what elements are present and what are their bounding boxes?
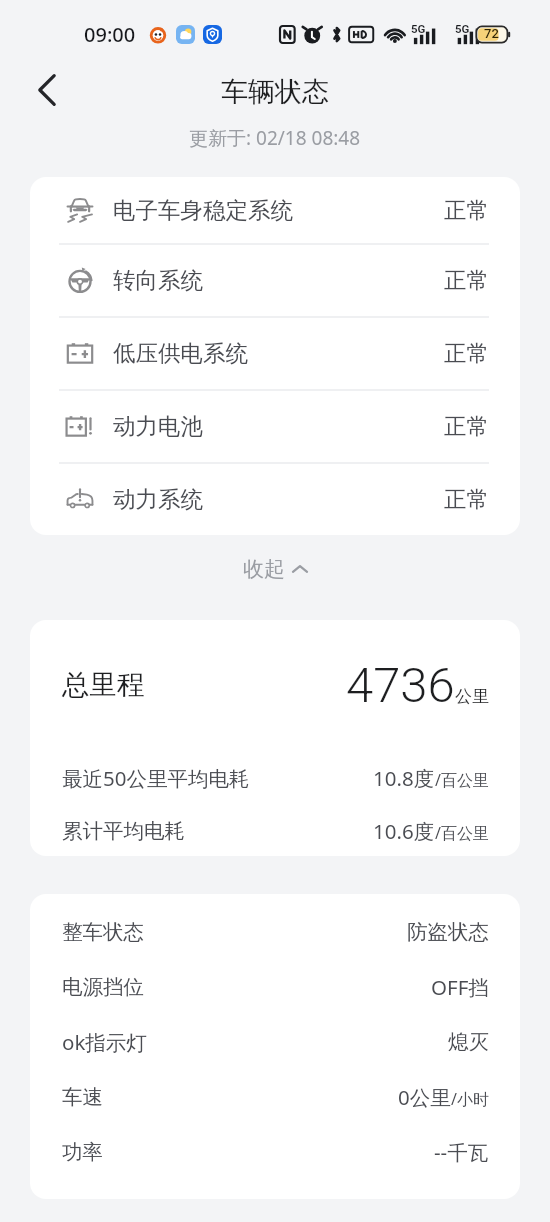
staticText: 72 (484, 26, 499, 41)
staticText: 转向系统 (113, 266, 203, 294)
staticText: 公里 (455, 686, 489, 707)
staticText: ok指示灯 (62, 1028, 147, 1056)
staticText: 电子车身稳定系统 (113, 196, 293, 224)
staticText: 熄灭 (448, 1029, 489, 1055)
staticText: --千瓦 (434, 1138, 489, 1166)
staticText: 车辆状态 (221, 75, 329, 109)
staticText: 更新于: 02/18 08:48 (189, 125, 361, 151)
staticText: 0公里 (398, 1083, 451, 1111)
staticText: 功率 (62, 1139, 103, 1165)
staticText: 车速 (62, 1084, 103, 1110)
staticText: 正常 (444, 196, 489, 224)
button[interactable]: 转向系统 (30, 243, 520, 316)
button[interactable]: 收起 (0, 535, 550, 620)
staticText: 10.6度 (373, 817, 435, 845)
staticText: 4736 (346, 657, 455, 714)
staticText: 5G (411, 22, 426, 35)
button[interactable]: 低压供电系统 (30, 316, 520, 389)
staticText: 电源挡位 (62, 974, 144, 1000)
staticText: /小时 (451, 1088, 489, 1110)
staticText: 总里程 (62, 668, 145, 703)
button[interactable]: 动力电池 (30, 389, 520, 462)
staticText: 防盗状态 (407, 919, 489, 945)
button[interactable]: Back (21, 64, 73, 116)
staticText: 09:00 (84, 21, 136, 48)
staticText: /百公里 (435, 822, 489, 844)
staticText: 累计平均电耗 (62, 818, 185, 844)
staticText: 动力电池 (113, 412, 203, 440)
staticText: /百公里 (435, 769, 489, 791)
button[interactable]: 动力系统 (30, 462, 520, 535)
staticText: 低压供电系统 (113, 339, 248, 367)
staticText: 10.8度 (373, 764, 435, 792)
staticText: 最近50公里平均电耗 (62, 764, 250, 792)
staticText: 正常 (444, 485, 489, 513)
button[interactable]: 电子车身稳定系统 (30, 177, 520, 243)
staticText: 动力系统 (113, 485, 203, 513)
staticText: 5G (455, 22, 470, 35)
staticText: 整车状态 (62, 919, 144, 945)
staticText: 收起 (243, 556, 285, 582)
staticText: 正常 (444, 412, 489, 440)
staticText: 正常 (444, 339, 489, 367)
staticText: 正常 (444, 266, 489, 294)
staticText: OFF挡 (431, 973, 489, 1001)
